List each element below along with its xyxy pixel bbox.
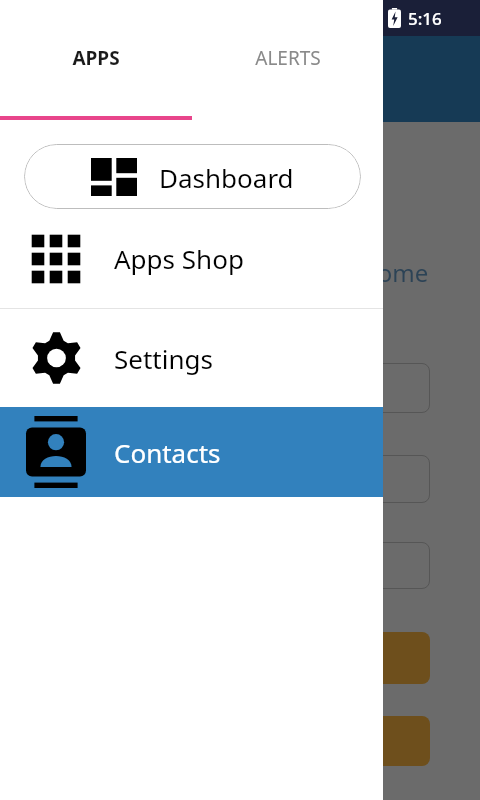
staticText: Settings (114, 341, 213, 376)
button[interactable]: Apps Shop (0, 209, 383, 308)
button[interactable]: Settings (0, 309, 383, 407)
staticText: APPS (72, 45, 120, 71)
staticText: Home (360, 256, 429, 289)
button[interactable]: Contacts (0, 407, 383, 497)
button[interactable]: Dashboard (24, 144, 361, 209)
staticText: 5:16 (408, 7, 442, 30)
staticText: ALERTS (255, 45, 321, 71)
button[interactable]: APPS (0, 0, 192, 116)
staticText: Dashboard (159, 160, 294, 195)
staticText: Apps Shop (114, 241, 244, 276)
button[interactable]: ALERTS (192, 0, 383, 116)
staticText: Contacts (114, 435, 221, 470)
